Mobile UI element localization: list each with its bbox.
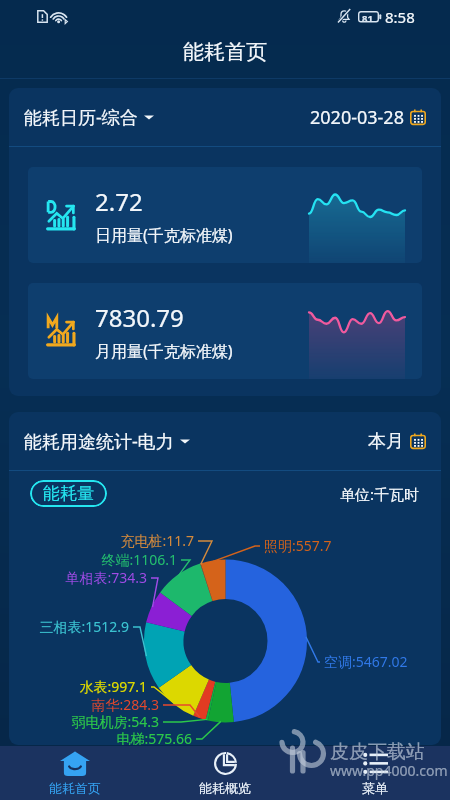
staticText: 能耗日历-综合 <box>24 105 138 130</box>
other: 菜单 <box>363 751 388 776</box>
other: Calendar <box>410 109 426 125</box>
staticText: 终端:1106.1 <box>9 550 177 569</box>
staticText: 弱电机房:54.3 <box>9 712 159 731</box>
staticText: 月用量(千克标准煤) <box>95 340 233 362</box>
staticText: www.pp4000.com <box>330 761 448 780</box>
staticText: 空调:5467.02 <box>324 652 441 671</box>
staticText: 2020-03-28 <box>310 105 404 130</box>
button[interactable]: 能耗日历-综合 <box>9 88 441 146</box>
staticText: 8:58 <box>385 7 415 27</box>
staticText: 照明:557.7 <box>264 536 441 555</box>
staticText: 水表:997.1 <box>9 677 147 696</box>
staticText: 电梯:575.66 <box>9 729 192 745</box>
button[interactable]: 能耗首页 <box>0 746 150 800</box>
other: Calendar <box>410 433 426 449</box>
staticText: 菜单 <box>362 780 388 796</box>
button[interactable]: 菜单 <box>300 746 450 800</box>
staticText: 2.72 <box>95 185 143 218</box>
staticText: 三相表:1512.9 <box>9 617 129 636</box>
other: 能耗概览 <box>213 751 238 776</box>
staticText: 能耗首页 <box>49 780 101 796</box>
staticText: 81 <box>362 12 373 25</box>
staticText: 能耗用途统计-电力 <box>24 429 174 454</box>
staticText: 能耗量 <box>43 483 94 504</box>
button[interactable]: 能耗概览 <box>150 746 300 800</box>
staticText: 7830.79 <box>95 301 184 334</box>
button[interactable]: 能耗量 <box>30 480 107 507</box>
button[interactable]: 能耗用途统计-电力 <box>9 412 441 470</box>
staticText: 单相表:734.3 <box>9 568 147 587</box>
staticText: 本月 <box>368 430 404 453</box>
button[interactable]: 7830.79 <box>28 283 422 379</box>
staticText: 日用量(千克标准煤) <box>95 224 233 246</box>
staticText: 能耗概览 <box>199 780 251 796</box>
staticText: 充电桩:11.7 <box>9 531 194 550</box>
staticText: 能耗首页 <box>183 39 267 65</box>
staticText: 皮皮下载站 <box>330 740 425 764</box>
button[interactable]: 2.72 <box>28 167 422 263</box>
other: 能耗首页 <box>60 751 90 776</box>
staticText: 南华:284.3 <box>9 695 159 714</box>
staticText: 单位:千瓦时 <box>340 484 420 504</box>
